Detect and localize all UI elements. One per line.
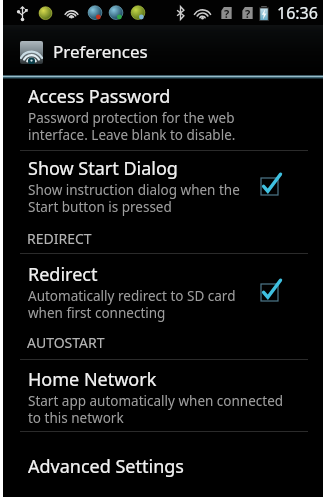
staticText: REDIRECT [27,229,92,248]
staticText: 16:36 [277,2,318,24]
button[interactable]: Show Start Dialog [3,156,323,216]
staticText: Preferences [53,40,148,63]
staticText: Show Start Dialog [28,156,178,181]
staticText: Start app automatically when connected t… [28,392,284,427]
button[interactable]: Toggle setting [255,169,285,199]
button[interactable]: Redirect [3,262,323,322]
staticText: ? [224,6,230,20]
staticText: Show instruction dialog when the Start b… [28,181,240,216]
staticText: AUTOSTART [27,333,105,352]
staticText: Advanced Settings [28,454,184,479]
button[interactable]: Advanced Settings [3,454,323,479]
button[interactable]: Preferences [3,25,323,75]
button[interactable]: Access Password [3,84,323,144]
staticText: ? [245,6,251,20]
staticText: Redirect [28,262,98,287]
staticText: Password protection for the web interfac… [28,109,236,144]
staticText: Automatically redirect to SD card when f… [28,287,236,322]
button[interactable]: Home Network [3,367,323,427]
staticText: Home Network [28,367,157,392]
staticText: Access Password [28,84,171,109]
button[interactable]: Toggle setting [255,275,285,305]
